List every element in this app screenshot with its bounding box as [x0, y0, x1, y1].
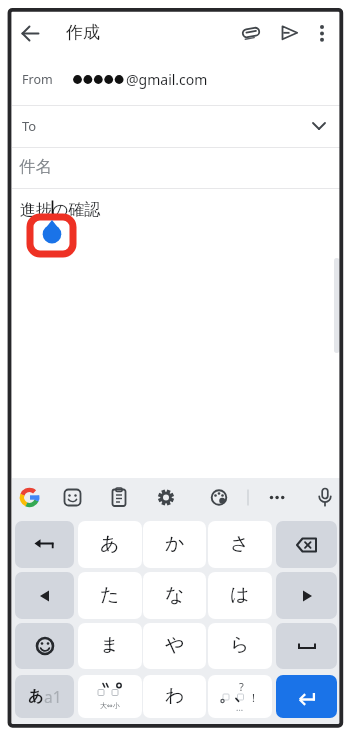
staticText: 進捗の確認	[20, 200, 101, 220]
staticText: あ	[100, 532, 120, 556]
staticText: To	[22, 117, 37, 135]
button[interactable]	[15, 483, 44, 512]
button[interactable]	[308, 17, 336, 49]
button[interactable]: は	[208, 572, 272, 619]
staticText: 大⇔小	[100, 701, 120, 710]
button[interactable]	[310, 483, 339, 512]
staticText: ま	[100, 633, 120, 657]
button[interactable]: ら	[208, 623, 272, 669]
staticText: a1	[44, 686, 62, 707]
button[interactable]	[15, 521, 74, 568]
staticText: ら	[230, 633, 250, 657]
button[interactable]	[58, 483, 87, 512]
staticText: や	[165, 633, 185, 657]
button[interactable]	[15, 572, 74, 619]
button[interactable]: ?	[208, 675, 272, 718]
button[interactable]	[276, 623, 337, 669]
staticText: From	[22, 71, 53, 88]
button[interactable]	[262, 483, 291, 512]
staticText: た	[100, 583, 120, 607]
button[interactable]	[276, 521, 337, 568]
button[interactable]	[274, 17, 306, 49]
button[interactable]	[12, 189, 340, 478]
button[interactable]: あ	[15, 675, 74, 718]
button[interactable]	[12, 106, 340, 148]
button[interactable]	[204, 483, 233, 512]
button[interactable]: な	[143, 572, 206, 619]
button[interactable]	[12, 148, 340, 189]
button[interactable]	[105, 483, 134, 512]
button[interactable]: た	[78, 572, 142, 619]
staticText: あ	[28, 687, 44, 706]
button[interactable]	[236, 17, 268, 49]
staticText: わ	[165, 684, 185, 708]
button[interactable]: か	[143, 521, 206, 568]
staticText: @gmail.com	[126, 70, 208, 89]
staticText: な	[165, 583, 185, 607]
staticText: は	[230, 583, 250, 607]
staticText: さ	[230, 532, 250, 556]
button[interactable]: さ	[208, 521, 272, 568]
button[interactable]: ま	[78, 623, 142, 669]
staticText: ?	[239, 679, 244, 694]
button[interactable]: 大⇔小	[78, 675, 142, 718]
button[interactable]: 作成	[66, 22, 100, 43]
button[interactable]: あ	[78, 521, 142, 568]
button[interactable]: わ	[143, 675, 206, 718]
staticText: か	[165, 532, 185, 556]
staticText: !	[252, 690, 255, 705]
button[interactable]	[152, 483, 181, 512]
staticText: 件名	[19, 156, 52, 177]
button[interactable]	[276, 572, 337, 619]
button[interactable]	[14, 16, 48, 50]
button[interactable]	[276, 675, 337, 718]
button[interactable]: や	[143, 623, 206, 669]
button[interactable]	[15, 623, 74, 669]
staticText: …	[236, 701, 244, 713]
button[interactable]	[12, 58, 340, 105]
